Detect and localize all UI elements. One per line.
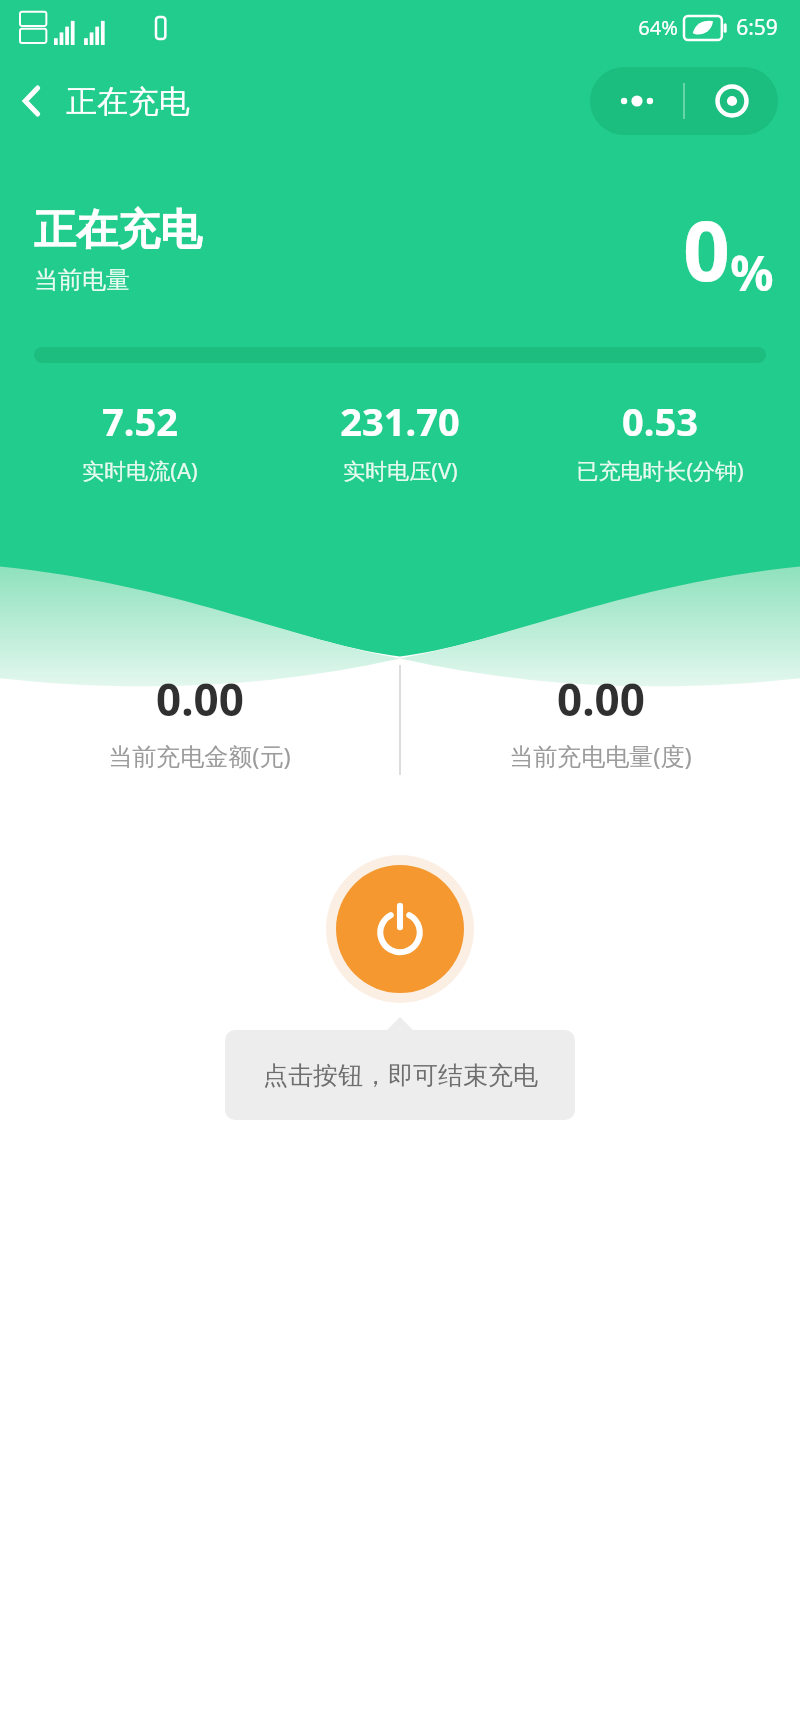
staticText: 7.52: [102, 395, 178, 447]
staticText: 实时电流(A): [82, 455, 198, 485]
staticText: 当前充电电量(度): [509, 739, 692, 772]
staticText: 当前电量: [34, 265, 130, 295]
button[interactable]: Back: [0, 68, 66, 134]
staticText: 64%: [638, 14, 678, 41]
staticText: 231.70: [340, 395, 460, 447]
staticText: 正在充电: [66, 82, 190, 121]
staticText: 0.00: [557, 669, 645, 729]
staticText: 0: [683, 193, 730, 305]
button[interactable]: Close: [685, 67, 778, 135]
staticText: 6:59: [736, 13, 778, 42]
button[interactable]: More options: [590, 67, 683, 135]
staticText: 0.00: [156, 669, 244, 729]
staticText: 正在充电: [34, 204, 202, 257]
staticText: 0.53: [622, 395, 698, 447]
button[interactable]: Stop charging: [326, 855, 474, 1003]
staticText: 已充电时长(分钟): [576, 455, 744, 485]
staticText: %: [730, 240, 774, 305]
staticText: 当前充电金额(元): [108, 739, 291, 772]
staticText: 点击按钮，即可结束充电: [263, 1060, 538, 1091]
staticText: 实时电压(V): [343, 455, 458, 485]
